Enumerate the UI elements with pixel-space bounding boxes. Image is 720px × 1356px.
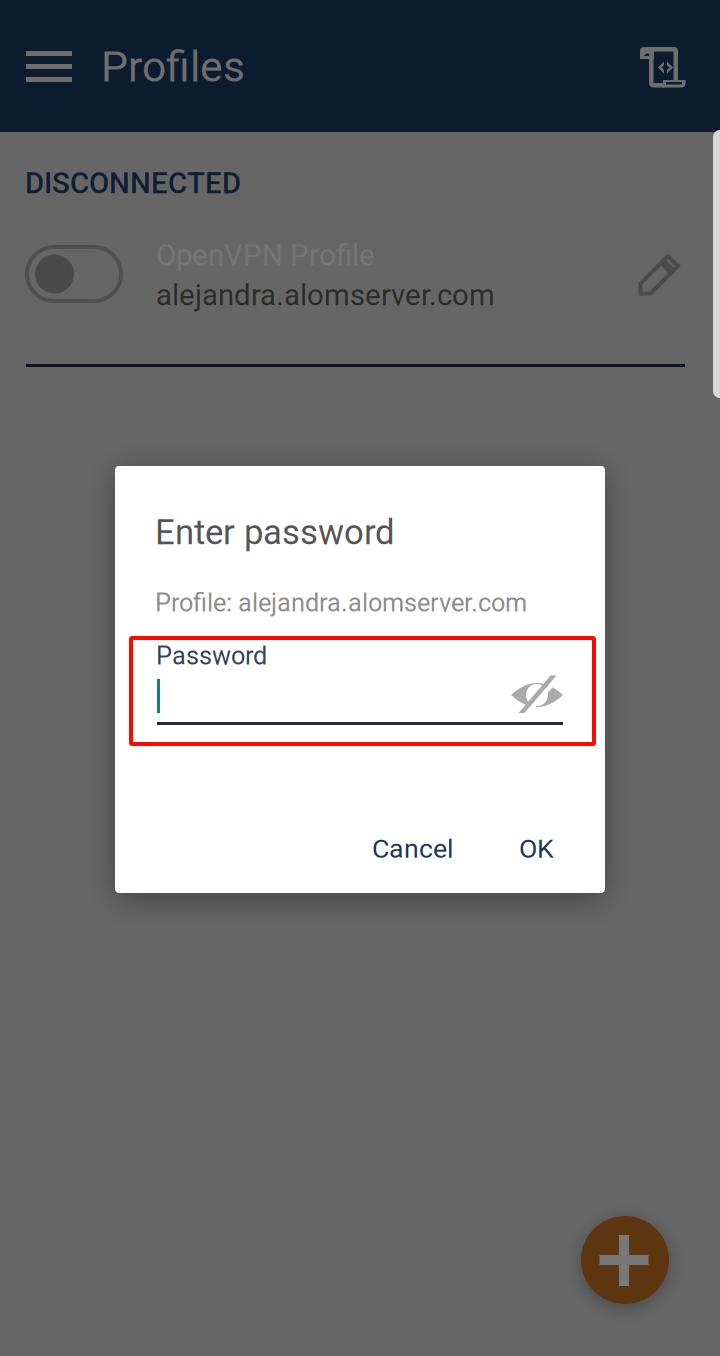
button[interactable]: Edit profile <box>628 243 691 305</box>
staticText: alejandra.alomserver.com <box>156 278 495 312</box>
staticText: Password <box>156 641 267 671</box>
button[interactable]: Cancel <box>350 820 474 878</box>
staticText: DISCONNECTED <box>25 166 241 200</box>
staticText: Profiles <box>101 42 245 92</box>
button[interactable]: OpenVPN Profile <box>0 218 600 330</box>
staticText: Cancel <box>372 833 453 864</box>
staticText: Enter password <box>155 512 395 553</box>
button[interactable]: OK <box>497 820 575 878</box>
staticText: OK <box>519 833 554 864</box>
button[interactable]: Menu <box>0 0 98 132</box>
button[interactable]: Show log <box>617 0 717 132</box>
button[interactable]: Add profile <box>581 1216 669 1304</box>
staticText: OpenVPN Profile <box>156 238 375 272</box>
staticText: Profile: alejandra.alomserver.com <box>155 588 527 618</box>
